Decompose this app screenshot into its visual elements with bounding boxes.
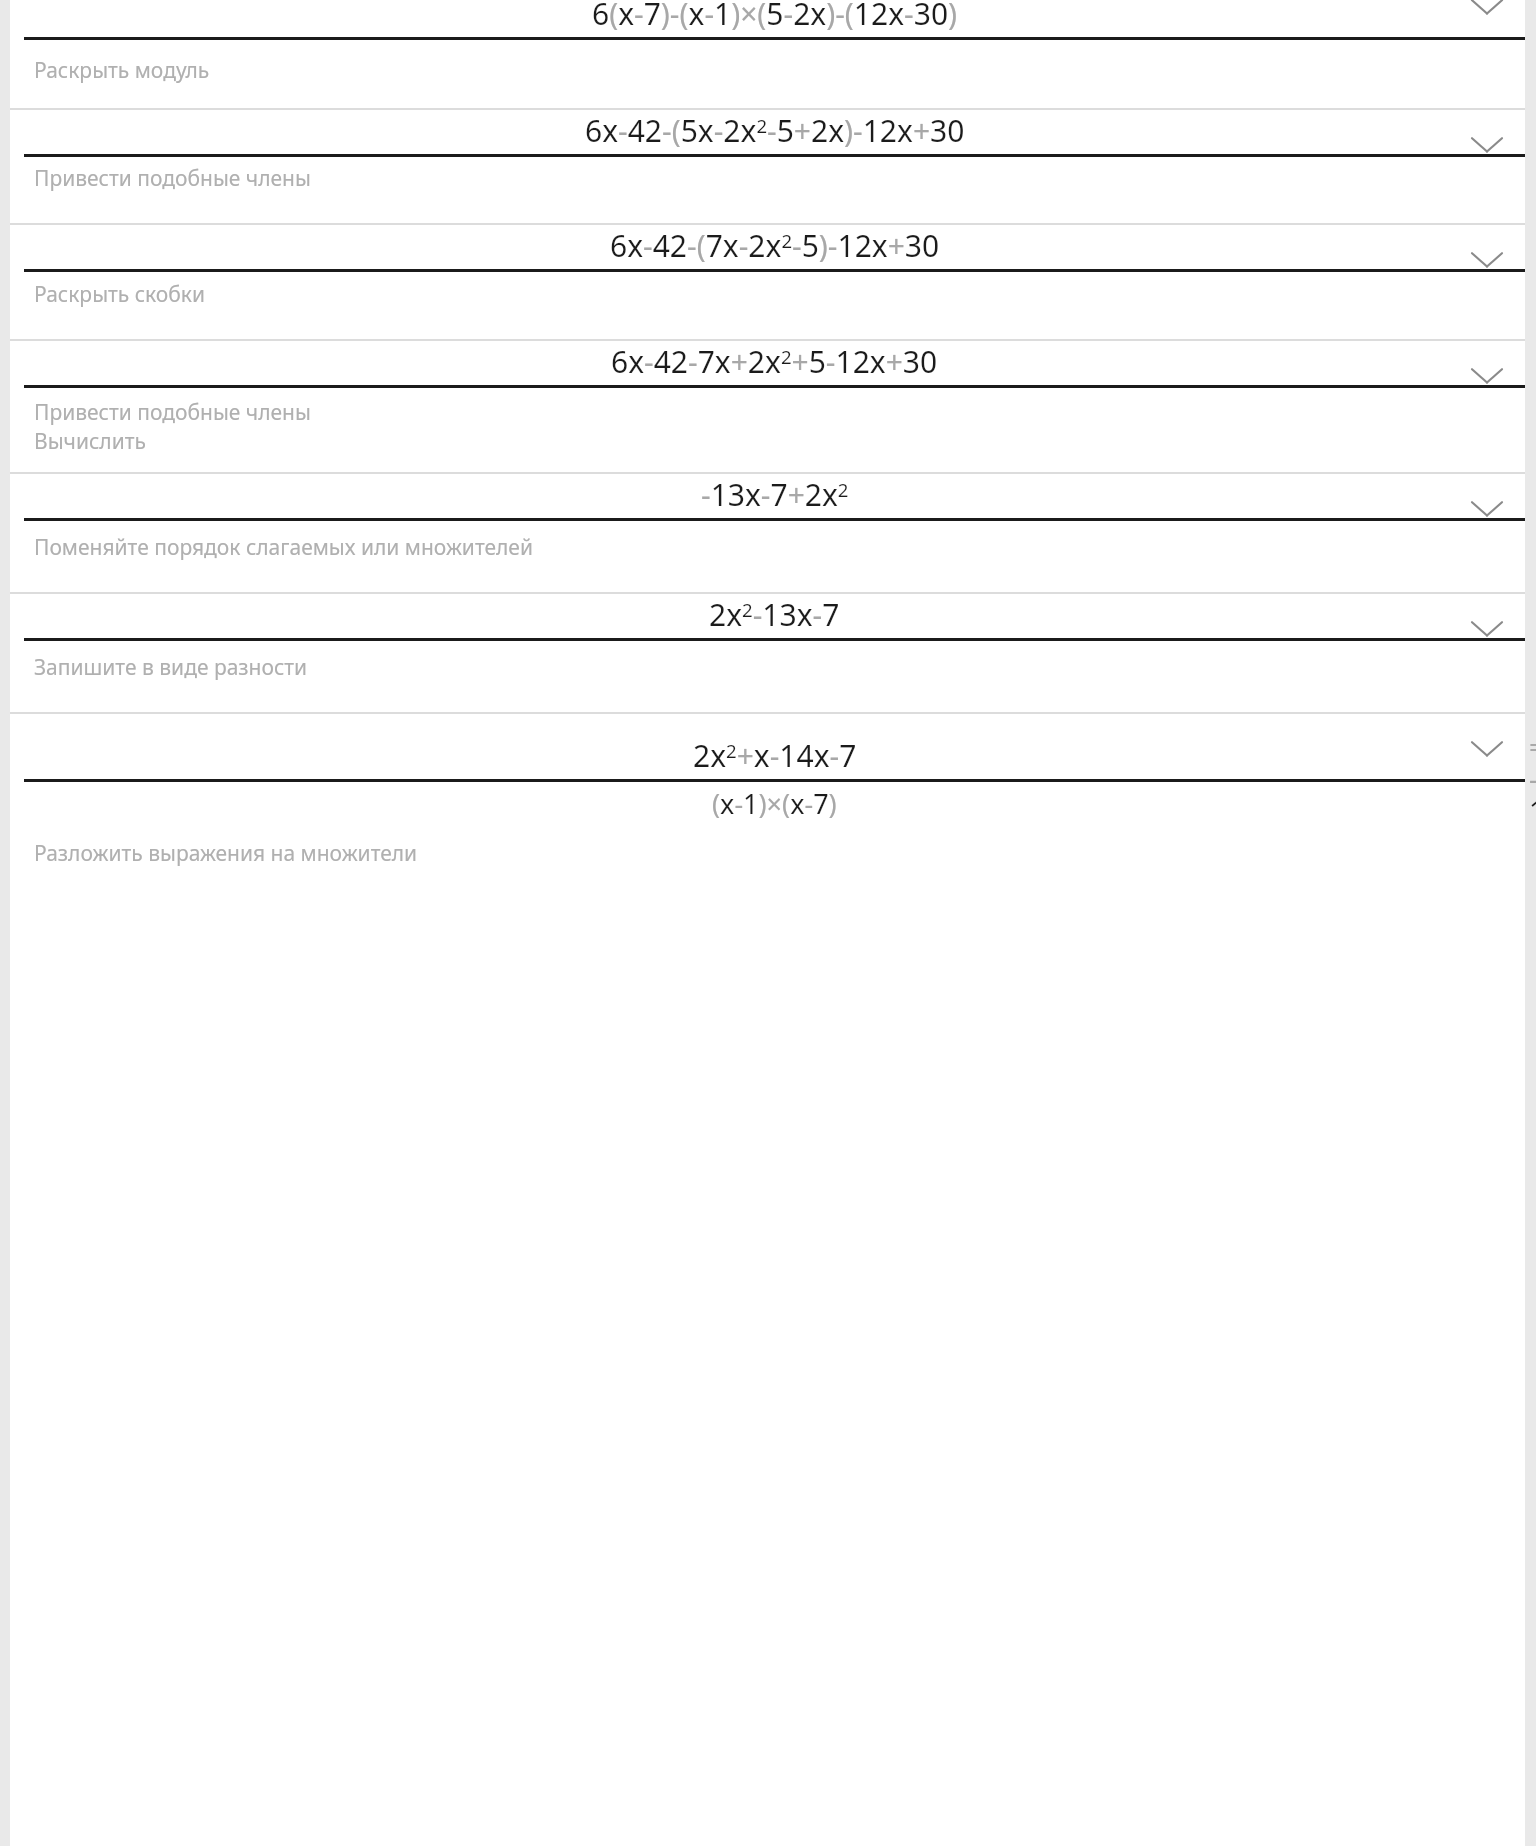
staticText: 2x2-13x-7 — [709, 594, 840, 635]
staticText: 6x-42-(7x-2x2-5)-12x+30 — [610, 225, 940, 266]
button[interactable]: -13x-7+2x2 — [10, 474, 1525, 592]
staticText: Привести подобные члены — [34, 398, 311, 427]
staticText: Раскрыть модуль — [34, 56, 210, 85]
button[interactable]: 6x-42-(5x-2x2-5+2x)-12x+30 — [10, 110, 1525, 223]
button[interactable]: Expand step — [1459, 600, 1515, 656]
staticText: Поменяйте порядок слагаемых или множител… — [34, 533, 533, 562]
button[interactable]: Expand step — [1459, 480, 1515, 536]
button[interactable]: Expand step — [1459, 347, 1515, 403]
staticText: (x-1)×(x-7) — [712, 785, 837, 822]
staticText: Запишите в виде разности — [34, 653, 308, 682]
staticText: 6(x-7)-(x-1)×(5-2x)-(12x-30) — [592, 0, 958, 34]
staticText: Раскрыть скобки — [34, 280, 206, 309]
staticText: -13x-7+2x2 — [701, 474, 849, 515]
button[interactable]: 2x2-13x-7 — [10, 594, 1525, 712]
button[interactable]: 6x-42-7x+2x2+5-12x+30 — [10, 341, 1525, 472]
button[interactable]: 6x-42-(7x-2x2-5)-12x+30 — [10, 225, 1525, 339]
staticText: 6x-42-(5x-2x2-5+2x)-12x+30 — [585, 110, 965, 151]
button[interactable]: Expand step — [1459, 231, 1515, 287]
staticText: Разложить выражения на множители — [34, 839, 418, 868]
staticText: Привести подобные члены — [34, 164, 311, 193]
staticText: 2x2+x-14x-7 — [693, 735, 857, 776]
staticText: 6x-42-7x+2x2+5-12x+30 — [611, 341, 938, 382]
button[interactable]: Expand step — [1459, 116, 1515, 172]
button[interactable]: Expand step — [1459, 720, 1515, 776]
button[interactable]: Expand step — [1459, 0, 1515, 34]
staticText: Вычислить — [34, 427, 146, 456]
button[interactable]: 6(x-7)-(x-1)×(5-2x)-(12x-30) — [10, 0, 1525, 108]
button[interactable]: 2x2+x-14x-7 — [10, 714, 1525, 1846]
